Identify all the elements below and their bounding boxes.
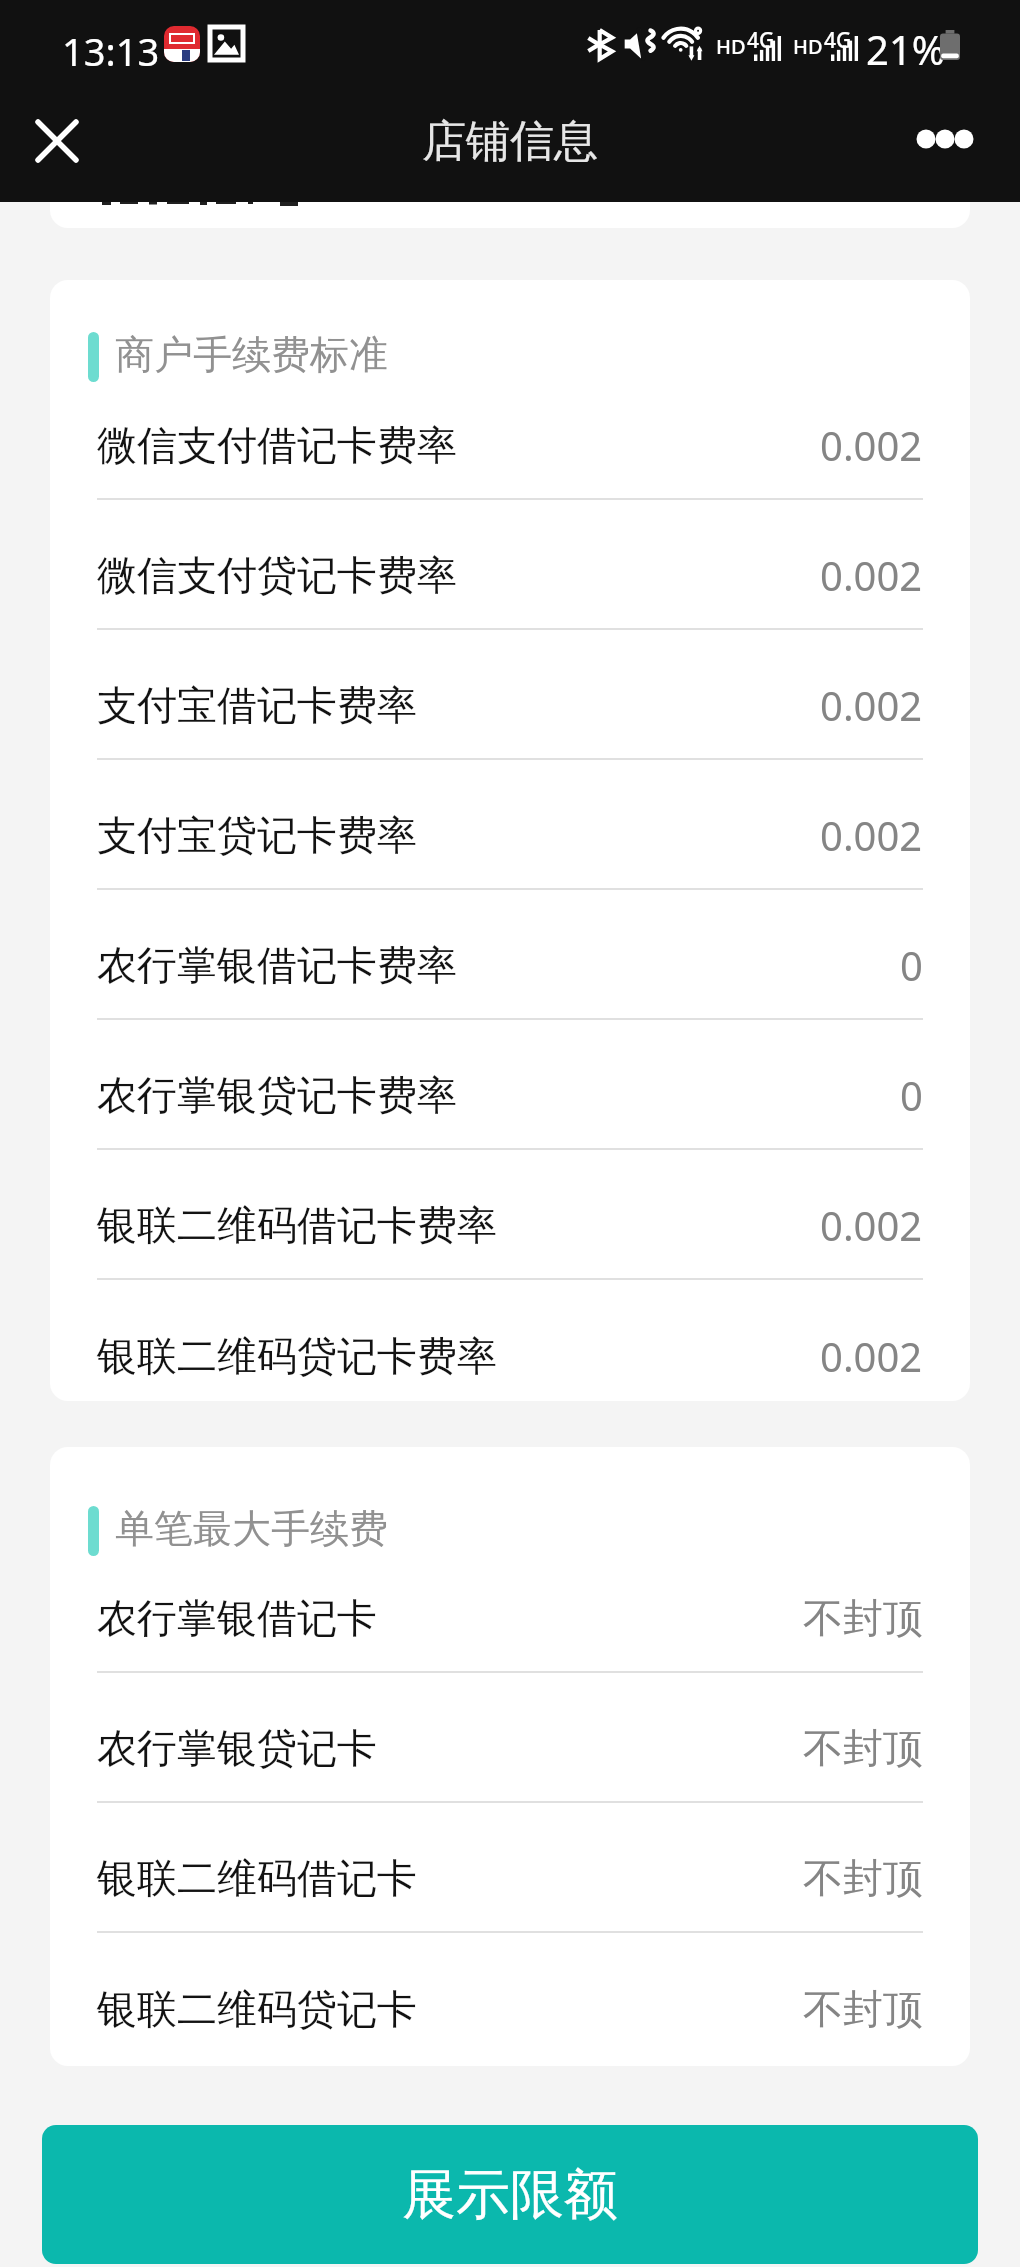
button[interactable]: More options: [905, 105, 985, 185]
staticText: 银联二维码贷记卡费率: [97, 1331, 497, 1381]
button[interactable]: 农行掌银借记卡: [50, 1543, 970, 1671]
button[interactable]: 银联二维码贷记卡费率: [50, 1280, 970, 1401]
button[interactable]: 银联二维码借记卡费率: [50, 1150, 970, 1278]
button[interactable]: 农行掌银借记卡费率: [50, 890, 970, 1018]
staticText: 商户手续费标准: [115, 330, 388, 379]
staticText: 农行掌银借记卡费率: [97, 940, 457, 990]
button[interactable]: 银联二维码贷记卡: [50, 1933, 970, 2066]
button[interactable]: 农行掌银贷记卡: [50, 1673, 970, 1801]
button[interactable]: Close: [17, 101, 97, 181]
staticText: 4G: [747, 26, 775, 55]
staticText: 0: [900, 1068, 923, 1122]
staticText: 0.002: [820, 1329, 923, 1383]
staticText: 不封顶: [803, 1723, 923, 1773]
staticText: 0.002: [820, 808, 923, 862]
button[interactable]: 支付宝借记卡费率: [50, 630, 970, 758]
staticText: 支付宝贷记卡费率: [97, 810, 417, 860]
staticText: 不封顶: [803, 1984, 923, 2034]
staticText: 13:13: [62, 25, 160, 77]
button[interactable]: 支付宝贷记卡费率: [50, 760, 970, 888]
staticText: 不封顶: [803, 1593, 923, 1643]
button[interactable]: 微信支付贷记卡费率: [50, 500, 970, 628]
button[interactable]: 银联二维码借记卡: [50, 1803, 970, 1931]
button[interactable]: 展示限额: [42, 2125, 978, 2264]
staticText: 0.002: [820, 548, 923, 602]
button[interactable]: 微信支付借记卡费率: [50, 370, 970, 498]
staticText: HD: [716, 33, 746, 60]
button[interactable]: 农行掌银贷记卡费率: [50, 1020, 970, 1148]
staticText: 微信支付借记卡费率: [97, 420, 457, 470]
staticText: 0.002: [820, 418, 923, 472]
staticText: 4G: [824, 26, 852, 55]
staticText: 银联二维码贷记卡: [97, 1984, 417, 2034]
staticText: 展示限额: [402, 2161, 618, 2229]
staticText: 银联二维码借记卡: [97, 1853, 417, 1903]
staticText: 单笔最大手续费: [115, 1504, 388, 1553]
staticText: 不封顶: [803, 1853, 923, 1903]
staticText: 0: [900, 938, 923, 992]
staticText: 0.002: [820, 1198, 923, 1252]
staticText: 支付宝借记卡费率: [97, 680, 417, 730]
staticText: 银联二维码借记卡费率: [97, 1200, 497, 1250]
staticText: 21%: [866, 22, 945, 76]
staticText: 农行掌银借记卡: [97, 1593, 377, 1643]
staticText: 微信支付贷记卡费率: [97, 550, 457, 600]
staticText: 农行掌银贷记卡: [97, 1723, 377, 1773]
staticText: 店铺信息: [422, 114, 598, 169]
staticText: 0.002: [820, 678, 923, 732]
staticText: 农行掌银贷记卡费率: [97, 1070, 457, 1120]
staticText: HD: [793, 33, 823, 60]
